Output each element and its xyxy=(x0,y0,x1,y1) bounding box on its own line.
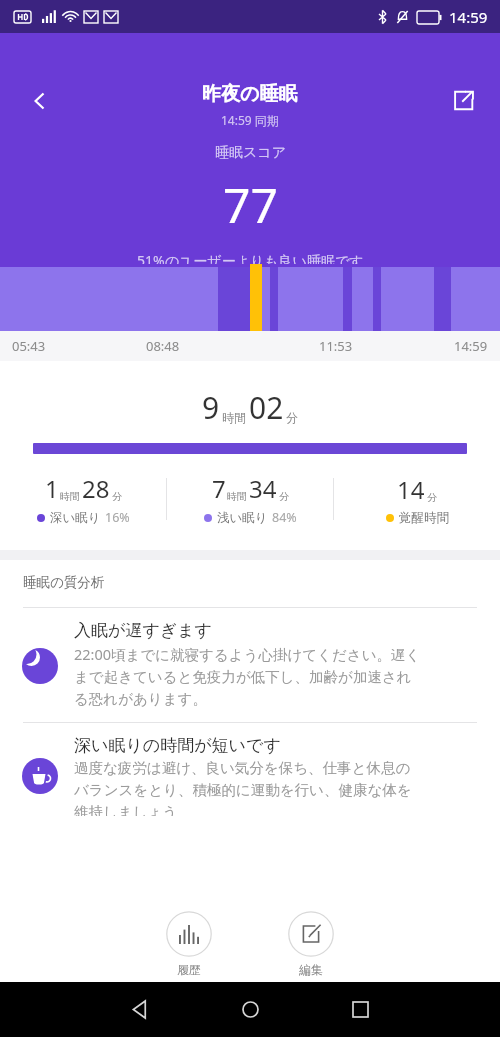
button[interactable]: Home xyxy=(221,982,279,1037)
staticText: 時間 xyxy=(60,490,80,503)
button[interactable]: 編集 xyxy=(284,907,338,981)
staticText: 睡眠の質分析 xyxy=(23,574,105,591)
staticText: 16% xyxy=(105,509,130,526)
staticText: 編集 xyxy=(299,962,323,977)
staticText: 浅い眠り xyxy=(217,510,268,526)
staticText: 履歴 xyxy=(177,962,201,977)
staticText: 14 xyxy=(397,473,425,506)
staticText: 昨夜の睡眠 xyxy=(202,82,298,106)
staticText: 睡眠スコア xyxy=(215,144,286,162)
staticText: 深い眠り xyxy=(50,510,101,526)
button[interactable]: Back xyxy=(18,79,62,123)
staticText: 分 xyxy=(427,491,437,504)
staticText: る恐れがあります。 xyxy=(74,690,207,708)
button[interactable]: 14 xyxy=(334,473,500,526)
staticText: 維持しましょう xyxy=(74,803,178,816)
staticText: 深い眠りの時間が短いです xyxy=(74,735,281,756)
staticText: 7 xyxy=(212,472,226,505)
button[interactable]: Recents xyxy=(331,982,389,1037)
staticText: 05:43 xyxy=(12,337,46,355)
button[interactable]: 履歴 xyxy=(162,907,216,981)
staticText: 22:00頃までに就寝するよう心掛けてください。遅く xyxy=(74,644,421,664)
staticText: 77 xyxy=(223,172,278,237)
button[interactable]: 7 xyxy=(167,472,333,526)
staticText: 1 xyxy=(45,472,59,505)
staticText: 覚醒時間 xyxy=(399,510,449,526)
staticText: 過度な疲労は避け、良い気分を保ち、仕事と休息の xyxy=(74,759,411,777)
staticText: 分 xyxy=(112,490,122,503)
button[interactable]: Share xyxy=(440,77,486,123)
staticText: バランスをとり、積極的に運動を行い、健康な体を xyxy=(74,781,412,799)
button[interactable]: 入眠が遅すぎます xyxy=(0,608,500,722)
staticText: 51%のユーザーよりも良い睡眠です xyxy=(137,251,364,264)
button[interactable]: 1 xyxy=(0,472,166,526)
staticText: 時間 xyxy=(227,490,247,503)
staticText: 分 xyxy=(286,410,298,425)
staticText: まで起きていると免疫力が低下し、加齢が加速され xyxy=(74,668,412,686)
staticText: 02 xyxy=(249,387,284,428)
staticText: 14:59 xyxy=(449,7,488,27)
staticText: 分 xyxy=(279,490,289,503)
staticText: 時間 xyxy=(222,410,246,425)
staticText: 34 xyxy=(249,472,277,505)
staticText: 9 xyxy=(202,387,220,428)
button[interactable]: Back xyxy=(111,982,169,1037)
staticText: 08:48 xyxy=(146,337,180,355)
staticText: 14:59 同期 xyxy=(221,112,279,128)
staticText: 28 xyxy=(82,472,110,505)
button[interactable]: 深い眠りの時間が短いです xyxy=(0,723,500,826)
staticText: 84% xyxy=(272,509,297,526)
staticText: 14:59 xyxy=(454,337,488,355)
staticText: 入眠が遅すぎます xyxy=(74,620,212,641)
staticText: 11:53 xyxy=(319,337,353,355)
